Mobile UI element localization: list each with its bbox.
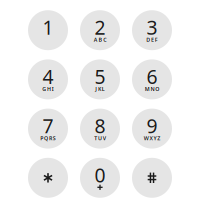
button[interactable]: 9 W X Y Z xyxy=(132,109,172,149)
button[interactable]: Pound xyxy=(132,158,172,198)
button[interactable]: 5 J K L xyxy=(80,59,120,99)
staticText: A xyxy=(94,36,98,43)
staticText: 6 xyxy=(146,63,157,90)
staticText: Y xyxy=(153,135,156,142)
button[interactable]: 1 xyxy=(28,10,68,50)
button[interactable]: 8 T U V xyxy=(80,109,120,149)
staticText: J xyxy=(95,85,97,93)
staticText: D xyxy=(146,36,150,43)
staticText: Q xyxy=(44,135,48,142)
staticText: 3 xyxy=(146,14,157,40)
staticText: X xyxy=(150,135,153,142)
staticText: 4 xyxy=(42,63,53,90)
staticText: P xyxy=(40,135,43,142)
staticText: I xyxy=(52,85,54,93)
staticText: S xyxy=(53,135,56,142)
staticText: 8 xyxy=(94,112,105,139)
staticText: 2 xyxy=(94,14,105,40)
staticText: 0 xyxy=(94,162,105,188)
staticText: O xyxy=(155,85,159,93)
staticText: H xyxy=(47,85,51,93)
staticText: W xyxy=(144,135,149,142)
staticText: 9 xyxy=(146,112,157,139)
staticText: R xyxy=(49,135,52,142)
staticText: L xyxy=(102,85,105,93)
staticText: C xyxy=(103,36,106,43)
button[interactable]: 3 D E F xyxy=(132,10,172,50)
staticText: V xyxy=(103,135,106,142)
staticText: Z xyxy=(157,135,160,142)
button[interactable]: Star xyxy=(28,158,68,198)
staticText: 7 xyxy=(42,112,53,139)
button[interactable]: 0 Plus xyxy=(80,158,120,198)
staticText: 1 xyxy=(42,14,53,40)
staticText: U xyxy=(98,135,102,142)
staticText: G xyxy=(42,85,46,93)
button[interactable]: 4 G H I xyxy=(28,59,68,99)
button[interactable]: 6 M N O xyxy=(132,59,172,99)
button[interactable]: 2 A B C xyxy=(80,10,120,50)
button[interactable]: 7 P Q R S xyxy=(28,109,68,149)
staticText: M xyxy=(145,85,150,93)
staticText: B xyxy=(98,36,102,43)
staticText: T xyxy=(94,135,97,142)
staticText: 5 xyxy=(94,63,105,90)
staticText: K xyxy=(98,85,101,93)
staticText: N xyxy=(150,85,154,93)
staticText: E xyxy=(151,36,154,43)
staticText: F xyxy=(155,36,158,43)
